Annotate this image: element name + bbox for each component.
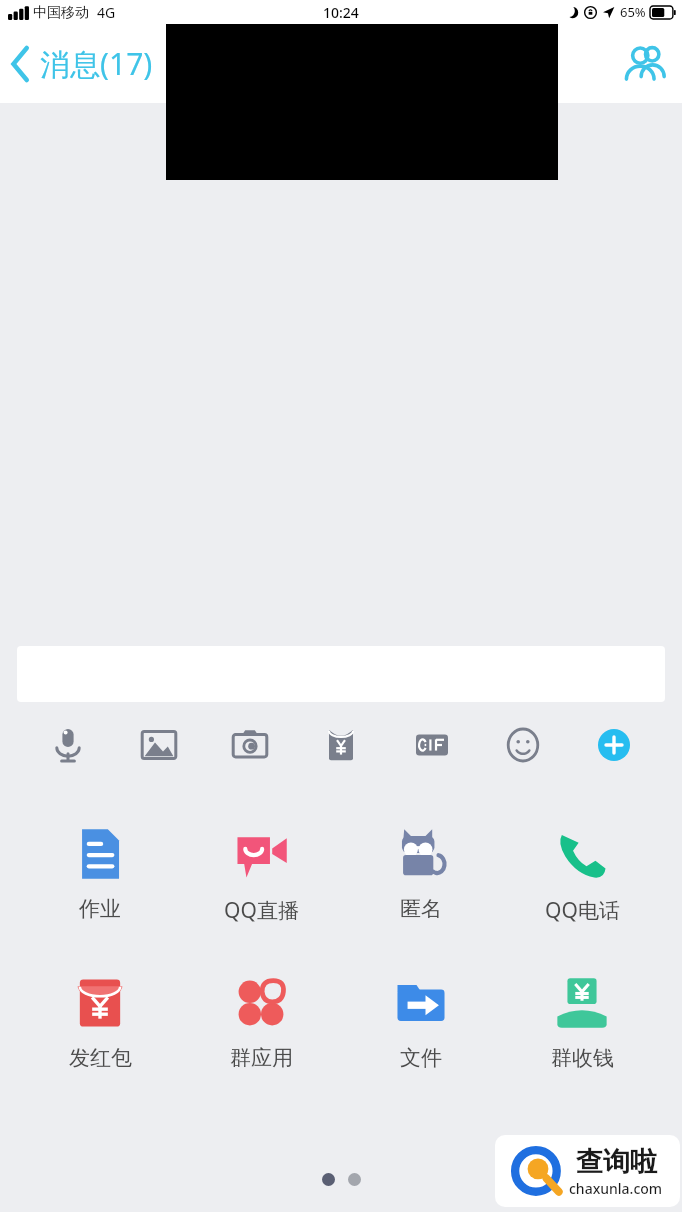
staticText: 匿名 bbox=[400, 896, 442, 922]
staticText: 群应用 bbox=[230, 1045, 293, 1071]
staticText: 作业 bbox=[79, 896, 121, 922]
button[interactable]: 消息(17) bbox=[0, 35, 165, 92]
button[interactable]: 匿名 bbox=[361, 822, 481, 926]
staticText: 4G bbox=[97, 3, 116, 22]
staticText: QQ电话 bbox=[545, 896, 620, 925]
button[interactable]: Red packet bbox=[312, 716, 370, 774]
staticText: 消息(17) bbox=[40, 43, 153, 84]
button[interactable]: GIF bbox=[403, 716, 461, 774]
button[interactable]: 作业 bbox=[40, 822, 160, 926]
staticText: 群收钱 bbox=[551, 1045, 614, 1071]
staticText: 查询啦 bbox=[576, 1145, 657, 1179]
button[interactable]: 文件 bbox=[361, 971, 481, 1075]
button[interactable]: More bbox=[585, 716, 643, 774]
staticText: 发红包 bbox=[69, 1045, 132, 1071]
button[interactable]: 发红包 bbox=[40, 971, 160, 1075]
staticText: 文件 bbox=[400, 1045, 442, 1071]
button[interactable]: 群收钱 bbox=[522, 971, 642, 1075]
button[interactable]: 群应用 bbox=[201, 971, 321, 1075]
button[interactable]: Camera bbox=[221, 716, 279, 774]
staticText: QQ直播 bbox=[224, 896, 299, 925]
button[interactable]: QQ电话 bbox=[522, 822, 642, 929]
button[interactable]: QQ直播 bbox=[201, 822, 321, 929]
button[interactable]: Voice message bbox=[39, 716, 97, 774]
button[interactable]: Photo bbox=[130, 716, 188, 774]
button[interactable]: Emoji bbox=[494, 716, 552, 774]
staticText: 65% bbox=[620, 3, 646, 21]
button[interactable]: Group members bbox=[604, 33, 682, 95]
staticText: chaxunla.com bbox=[569, 1179, 663, 1198]
staticText: 10:24 bbox=[323, 3, 359, 22]
staticText: 中国移动 bbox=[33, 4, 89, 22]
